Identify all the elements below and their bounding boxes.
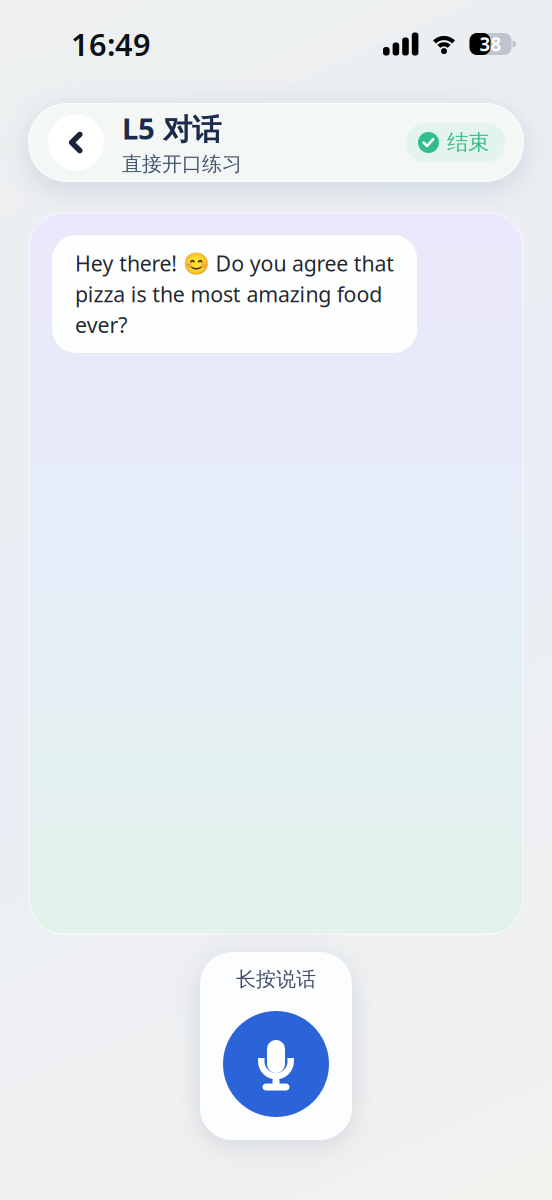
staticText: 结束 [447,129,489,156]
staticText: 38 [479,32,501,56]
button[interactable]: Back [48,114,104,170]
button[interactable]: 长按说话 [200,952,352,1140]
staticText: 16:49 [71,24,151,64]
button[interactable]: 结束 [406,123,505,162]
staticText: Hey there! 😊 Do you agree that pizza is … [75,249,394,339]
staticText: 直接开口练习 [122,152,242,176]
staticText: 长按说话 [236,967,316,992]
staticText: L5 对话 [122,109,221,148]
